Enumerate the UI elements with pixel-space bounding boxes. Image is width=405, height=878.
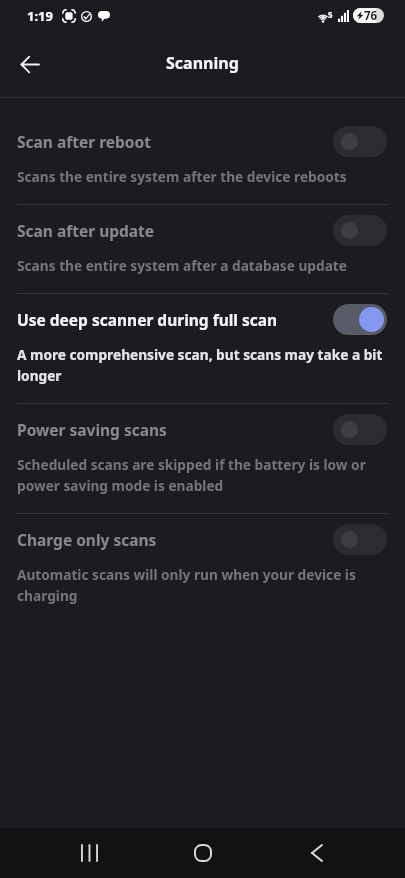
staticText: Automatic scans will only run when your … xyxy=(17,565,387,605)
button[interactable]: Switch off xyxy=(333,126,387,157)
button[interactable]: Power saving scans xyxy=(0,404,405,513)
button[interactable]: Switch off xyxy=(333,414,387,445)
staticText: Use deep scanner during full scan xyxy=(17,309,325,330)
button[interactable]: Scan after update xyxy=(0,205,405,293)
staticText: 1:19 xyxy=(27,7,53,25)
button[interactable]: Back xyxy=(8,42,52,86)
button[interactable]: Switch on xyxy=(333,304,387,335)
staticText: Scanning xyxy=(166,52,239,74)
staticText: 76 xyxy=(364,8,378,23)
button[interactable]: Switch off xyxy=(333,215,387,246)
button[interactable]: Scan after reboot xyxy=(0,116,405,204)
staticText: Scans the entire system after a database… xyxy=(17,256,347,275)
staticText: A more comprehensive scan, but scans may… xyxy=(17,345,387,385)
button[interactable]: Charge only scans xyxy=(0,514,405,623)
staticText: Scheduled scans are skipped if the batte… xyxy=(17,455,387,495)
staticText: Power saving scans xyxy=(17,419,325,440)
staticText: 5 xyxy=(328,9,333,20)
button[interactable]: Home xyxy=(174,828,231,878)
button[interactable]: Switch off xyxy=(333,524,387,555)
staticText: Charge only scans xyxy=(17,529,325,550)
button[interactable]: Back xyxy=(288,828,345,878)
staticText: Scan after update xyxy=(17,220,325,241)
button[interactable]: Recent apps xyxy=(61,828,118,878)
staticText: Scan after reboot xyxy=(17,131,325,152)
button[interactable]: Use deep scanner during full scan xyxy=(0,294,405,403)
staticText: Scans the entire system after the device… xyxy=(17,167,347,186)
